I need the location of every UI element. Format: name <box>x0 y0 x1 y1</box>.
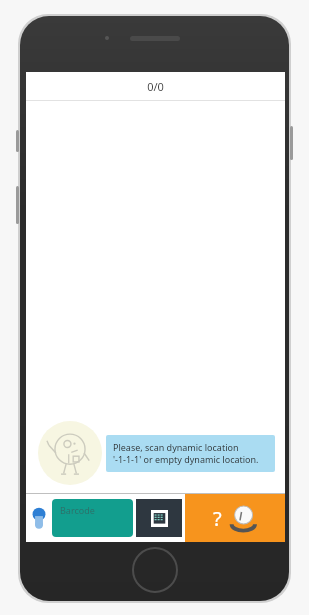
staticText: Barcode <box>60 504 95 516</box>
button[interactable]: 0/0 <box>26 72 285 100</box>
staticText: 0/0 <box>147 79 164 94</box>
button[interactable]: Barcode <box>52 499 133 537</box>
staticText: ? <box>213 505 222 532</box>
other: Assistant avatar <box>38 421 102 485</box>
button[interactable]: Location <box>26 494 52 542</box>
button[interactable]: Please, scan dynamic location '-1-1-1' o… <box>106 435 275 472</box>
button[interactable]: Keypad <box>136 499 182 537</box>
button[interactable]: Help <box>185 494 285 542</box>
staticText: Please, scan dynamic location '-1-1-1' o… <box>113 441 268 466</box>
